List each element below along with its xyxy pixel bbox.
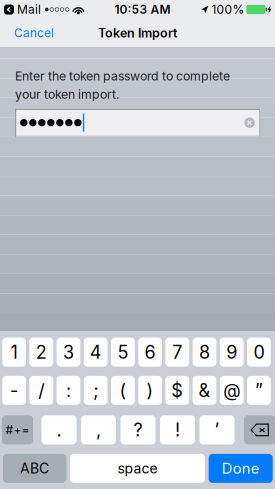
staticText: 2	[36, 341, 47, 363]
staticText: 1	[11, 341, 18, 363]
staticText: ABC	[20, 460, 49, 477]
button[interactable]: -	[2, 376, 26, 405]
staticText: :	[66, 379, 71, 401]
button[interactable]: ?	[120, 415, 155, 444]
staticText: Done	[222, 459, 260, 477]
button[interactable]: .	[41, 415, 76, 444]
staticText: #+=	[5, 423, 29, 437]
staticText: 8	[199, 341, 210, 363]
button[interactable]: $	[165, 376, 189, 405]
button[interactable]: /	[29, 376, 53, 405]
staticText: your token import.	[15, 87, 120, 102]
button[interactable]: Done	[209, 454, 273, 483]
button[interactable]: :	[57, 376, 80, 405]
button[interactable]: Cancel	[7, 19, 61, 47]
button[interactable]: !	[160, 415, 195, 444]
staticText: .	[56, 419, 61, 441]
button[interactable]: ABC	[3, 454, 66, 483]
button[interactable]: space	[70, 454, 205, 483]
button[interactable]: ,	[81, 415, 116, 444]
staticText: &	[198, 379, 210, 401]
staticText: ?	[133, 419, 142, 441]
staticText: 7	[172, 341, 182, 363]
staticText: 4	[90, 341, 102, 363]
button[interactable]: 0	[247, 338, 271, 367]
button[interactable]: 5	[111, 338, 135, 367]
staticText: !	[175, 419, 180, 441]
staticText: @	[223, 379, 240, 401]
button[interactable]: ’	[199, 415, 234, 444]
button[interactable]: 9	[220, 338, 244, 367]
button[interactable]: @	[220, 376, 244, 405]
staticText: 9	[226, 341, 237, 363]
button[interactable]: #+=	[2, 415, 33, 444]
staticText: 0	[253, 341, 264, 363]
staticText: 6	[145, 341, 156, 363]
button[interactable]: Delete	[244, 415, 275, 444]
staticText: 100%	[211, 2, 244, 17]
button[interactable]: 6	[138, 338, 162, 367]
staticText: Cancel	[14, 26, 54, 40]
staticText: ”	[255, 379, 263, 401]
staticText: $	[171, 379, 183, 401]
staticText: Token Import	[98, 25, 177, 41]
button[interactable]: ”	[247, 376, 271, 405]
staticText: ’	[214, 419, 219, 441]
staticText: space	[117, 460, 157, 477]
button[interactable]: Clear text	[240, 111, 259, 135]
staticText: Mail	[14, 2, 41, 17]
staticText: ;	[93, 379, 98, 401]
button[interactable]: 1	[2, 338, 26, 367]
staticText: Enter the token password to complete	[15, 68, 230, 83]
button[interactable]: 8	[193, 338, 216, 367]
staticText: -	[10, 379, 18, 401]
button[interactable]: (	[111, 376, 135, 405]
button[interactable]: &	[193, 376, 216, 405]
button[interactable]: 2	[29, 338, 53, 367]
staticText: (	[119, 379, 126, 401]
staticText: 3	[63, 341, 74, 363]
staticText: )	[147, 379, 154, 401]
button[interactable]: ;	[84, 376, 108, 405]
staticText: /	[38, 379, 44, 401]
staticText: ,	[96, 419, 101, 441]
button[interactable]: )	[138, 376, 162, 405]
button[interactable]: 7	[165, 338, 189, 367]
button[interactable]: 4	[84, 338, 108, 367]
staticText: 10:53 AM	[114, 2, 170, 17]
button[interactable]: 3	[57, 338, 80, 367]
staticText: 5	[117, 341, 128, 363]
